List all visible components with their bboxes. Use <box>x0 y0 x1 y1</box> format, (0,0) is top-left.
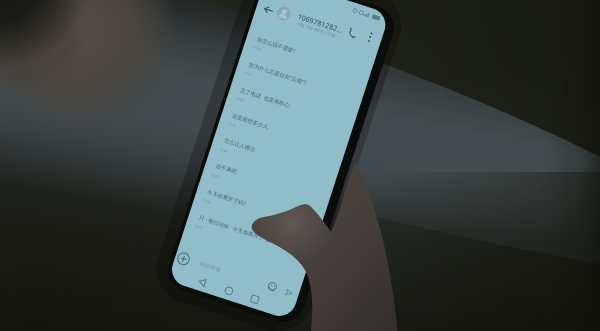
button[interactable]: Hand holding phone showing an SMS conver… <box>0 0 600 331</box>
